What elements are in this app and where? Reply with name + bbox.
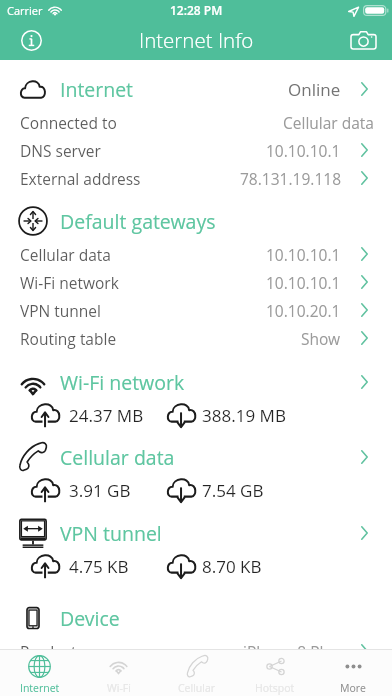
button[interactable]: Device [0,601,392,635]
button[interactable]: Internet [0,650,79,696]
staticText: Show [301,328,341,349]
button[interactable]: Info [13,22,49,58]
button[interactable]: DNS server [0,136,392,164]
staticText: Hotspot [255,681,295,695]
staticText: 10.10.10.1 [266,140,341,161]
staticText: iPhone 8 Plus [243,641,341,662]
staticText: Cellular data [20,244,111,265]
button[interactable]: Camera [345,22,381,58]
staticText: DNS server [20,140,101,161]
staticText: Internet [20,681,60,695]
staticText: Cellular data [60,444,175,471]
staticText: 3.91 GB [69,479,131,502]
button[interactable]: Hotspot [236,650,314,696]
button[interactable]: Wi-Fi network [0,268,392,296]
button[interactable]: VPN tunnel [0,296,392,324]
button[interactable]: VPN tunnel [0,516,392,550]
staticText: Wi-Fi network [60,369,185,396]
button[interactable]: Internet [0,72,392,106]
button[interactable]: More [314,650,392,696]
staticText: More [340,681,366,695]
staticText: VPN tunnel [20,300,101,321]
staticText: 10.10.10.1 [266,244,341,265]
staticText: Cellular data [283,112,374,133]
staticText: 10.10.10.1 [266,272,341,293]
staticText: 8.70 KB [202,555,262,578]
staticText: 12:28 PM [170,2,223,18]
button[interactable]: Cellular [158,650,236,696]
staticText: Default gateways [60,208,216,235]
button[interactable]: Wi-Fi network [0,365,392,399]
button[interactable]: Product [0,637,392,665]
staticText: Carrier [7,3,43,18]
button[interactable]: Cellular data [0,240,392,268]
button[interactable]: Cellular data [0,440,392,474]
button[interactable]: Default gateways [0,204,392,238]
staticText: Wi-Fi [107,681,131,695]
staticText: Routing table [20,328,117,349]
button[interactable]: Wi-Fi [79,650,158,696]
button[interactable]: Routing table [0,324,392,352]
staticText: 78.131.19.118 [240,168,341,189]
staticText: Online [288,78,341,101]
staticText: Device [60,605,120,632]
staticText: VPN tunnel [60,520,162,547]
staticText: Wi-Fi network [20,272,119,293]
staticText: 10.10.20.1 [266,300,341,321]
staticText: 388.19 MB [202,404,286,427]
staticText: External address [20,168,141,189]
button[interactable]: Connected to [0,108,392,136]
staticText: Internet [60,76,133,103]
staticText: Cellular [178,681,216,695]
staticText: Connected to [20,112,117,133]
staticText: 7.54 GB [202,479,264,502]
staticText: Internet Info [139,26,254,54]
button[interactable]: External address [0,164,392,192]
staticText: Product [20,641,77,662]
staticText: 24.37 MB [69,404,144,427]
staticText: 4.75 KB [69,555,129,578]
